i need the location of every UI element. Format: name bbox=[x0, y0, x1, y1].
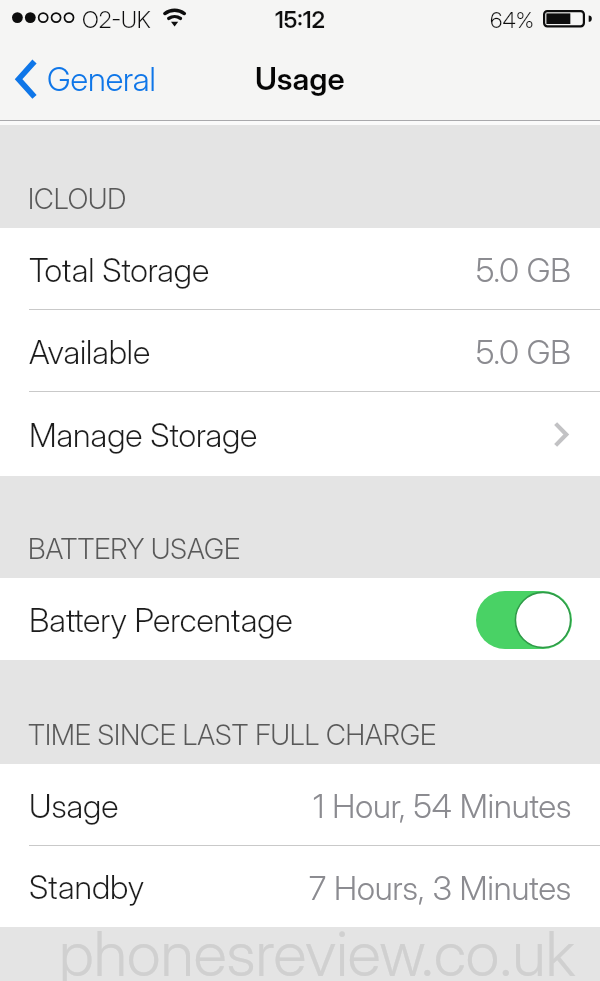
staticText: 7 Hours, 3 Minutes bbox=[309, 868, 572, 908]
staticText: 1 Hour, 54 Minutes bbox=[313, 786, 572, 826]
staticText: phonesreview.co.uk bbox=[59, 916, 576, 981]
staticText: Total Storage bbox=[29, 251, 210, 290]
staticText: 5.0 GB bbox=[476, 332, 572, 372]
staticText: Usage bbox=[255, 60, 345, 98]
button[interactable]: Manage Storage bbox=[0, 392, 600, 476]
staticText: Available bbox=[29, 333, 151, 372]
button[interactable]: Total Storage bbox=[0, 228, 600, 310]
staticText: General bbox=[47, 59, 156, 99]
button[interactable]: Standby bbox=[0, 846, 600, 927]
button[interactable]: Usage bbox=[0, 764, 600, 846]
other: Battery 64 percent bbox=[543, 10, 591, 28]
staticText: Usage bbox=[29, 787, 119, 826]
staticText: Standby bbox=[29, 868, 145, 907]
staticText: Manage Storage bbox=[29, 416, 258, 455]
button[interactable]: Battery Percentage bbox=[0, 578, 600, 660]
staticText: TIME SINCE LAST FULL CHARGE bbox=[28, 718, 436, 752]
staticText: 15:12 bbox=[275, 6, 326, 34]
other: Wi-Fi bbox=[162, 7, 188, 29]
staticText: BATTERY USAGE bbox=[28, 532, 240, 566]
other: Signal strength bbox=[12, 12, 78, 24]
staticText: 64% bbox=[490, 7, 534, 34]
staticText: ICLOUD bbox=[28, 182, 127, 216]
staticText: O2-UK bbox=[82, 6, 151, 34]
staticText: 5.0 GB bbox=[476, 250, 572, 290]
button[interactable]: Battery Percentage switch, on bbox=[476, 591, 572, 649]
button[interactable]: Available bbox=[0, 310, 600, 392]
button[interactable]: Back to General bbox=[6, 50, 162, 110]
staticText: Battery Percentage bbox=[29, 601, 293, 640]
